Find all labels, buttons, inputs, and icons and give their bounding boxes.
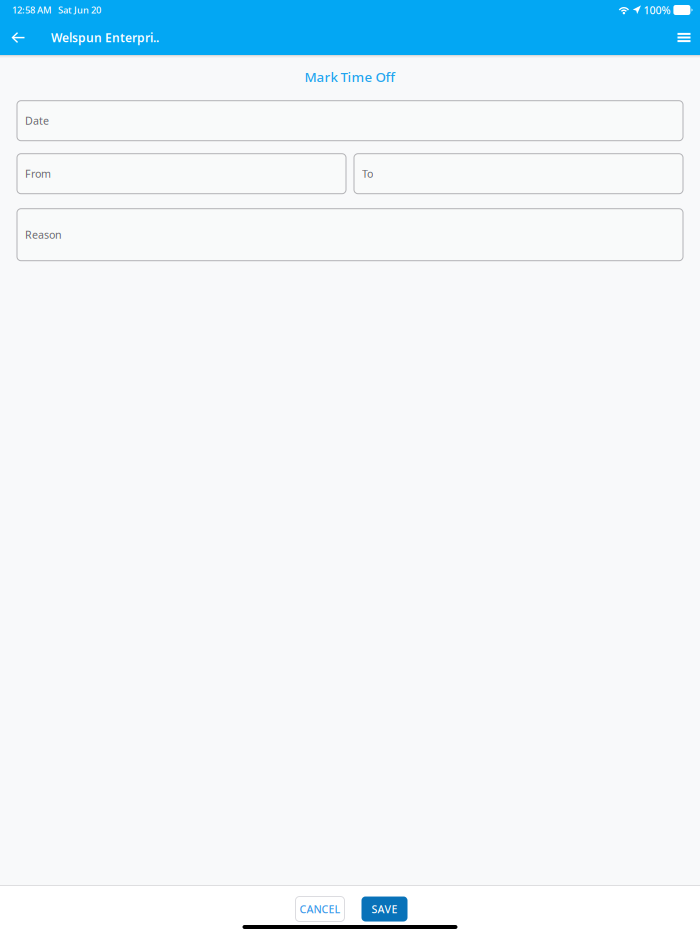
staticText: From (25, 167, 51, 181)
staticText: Welspun Enterpri.. (51, 29, 159, 45)
staticText: SAVE (371, 902, 397, 916)
staticText: Date (25, 114, 49, 128)
staticText: CANCEL (299, 902, 340, 916)
staticText: Reason (25, 228, 62, 242)
button[interactable]: From (17, 154, 346, 194)
button[interactable]: Date (17, 101, 683, 141)
button[interactable]: Menu (674, 21, 694, 54)
button[interactable]: To (354, 154, 683, 194)
button[interactable]: Reason (17, 209, 683, 261)
staticText: Sat Jun 20 (58, 4, 101, 16)
button[interactable]: Back (5, 21, 31, 54)
staticText: 12:58 AM (12, 4, 52, 16)
button[interactable]: CANCEL (295, 896, 344, 921)
staticText: To (362, 167, 373, 181)
button[interactable]: SAVE (361, 896, 407, 921)
staticText: 100% (643, 3, 670, 17)
staticText: Mark Time Off (304, 68, 395, 86)
